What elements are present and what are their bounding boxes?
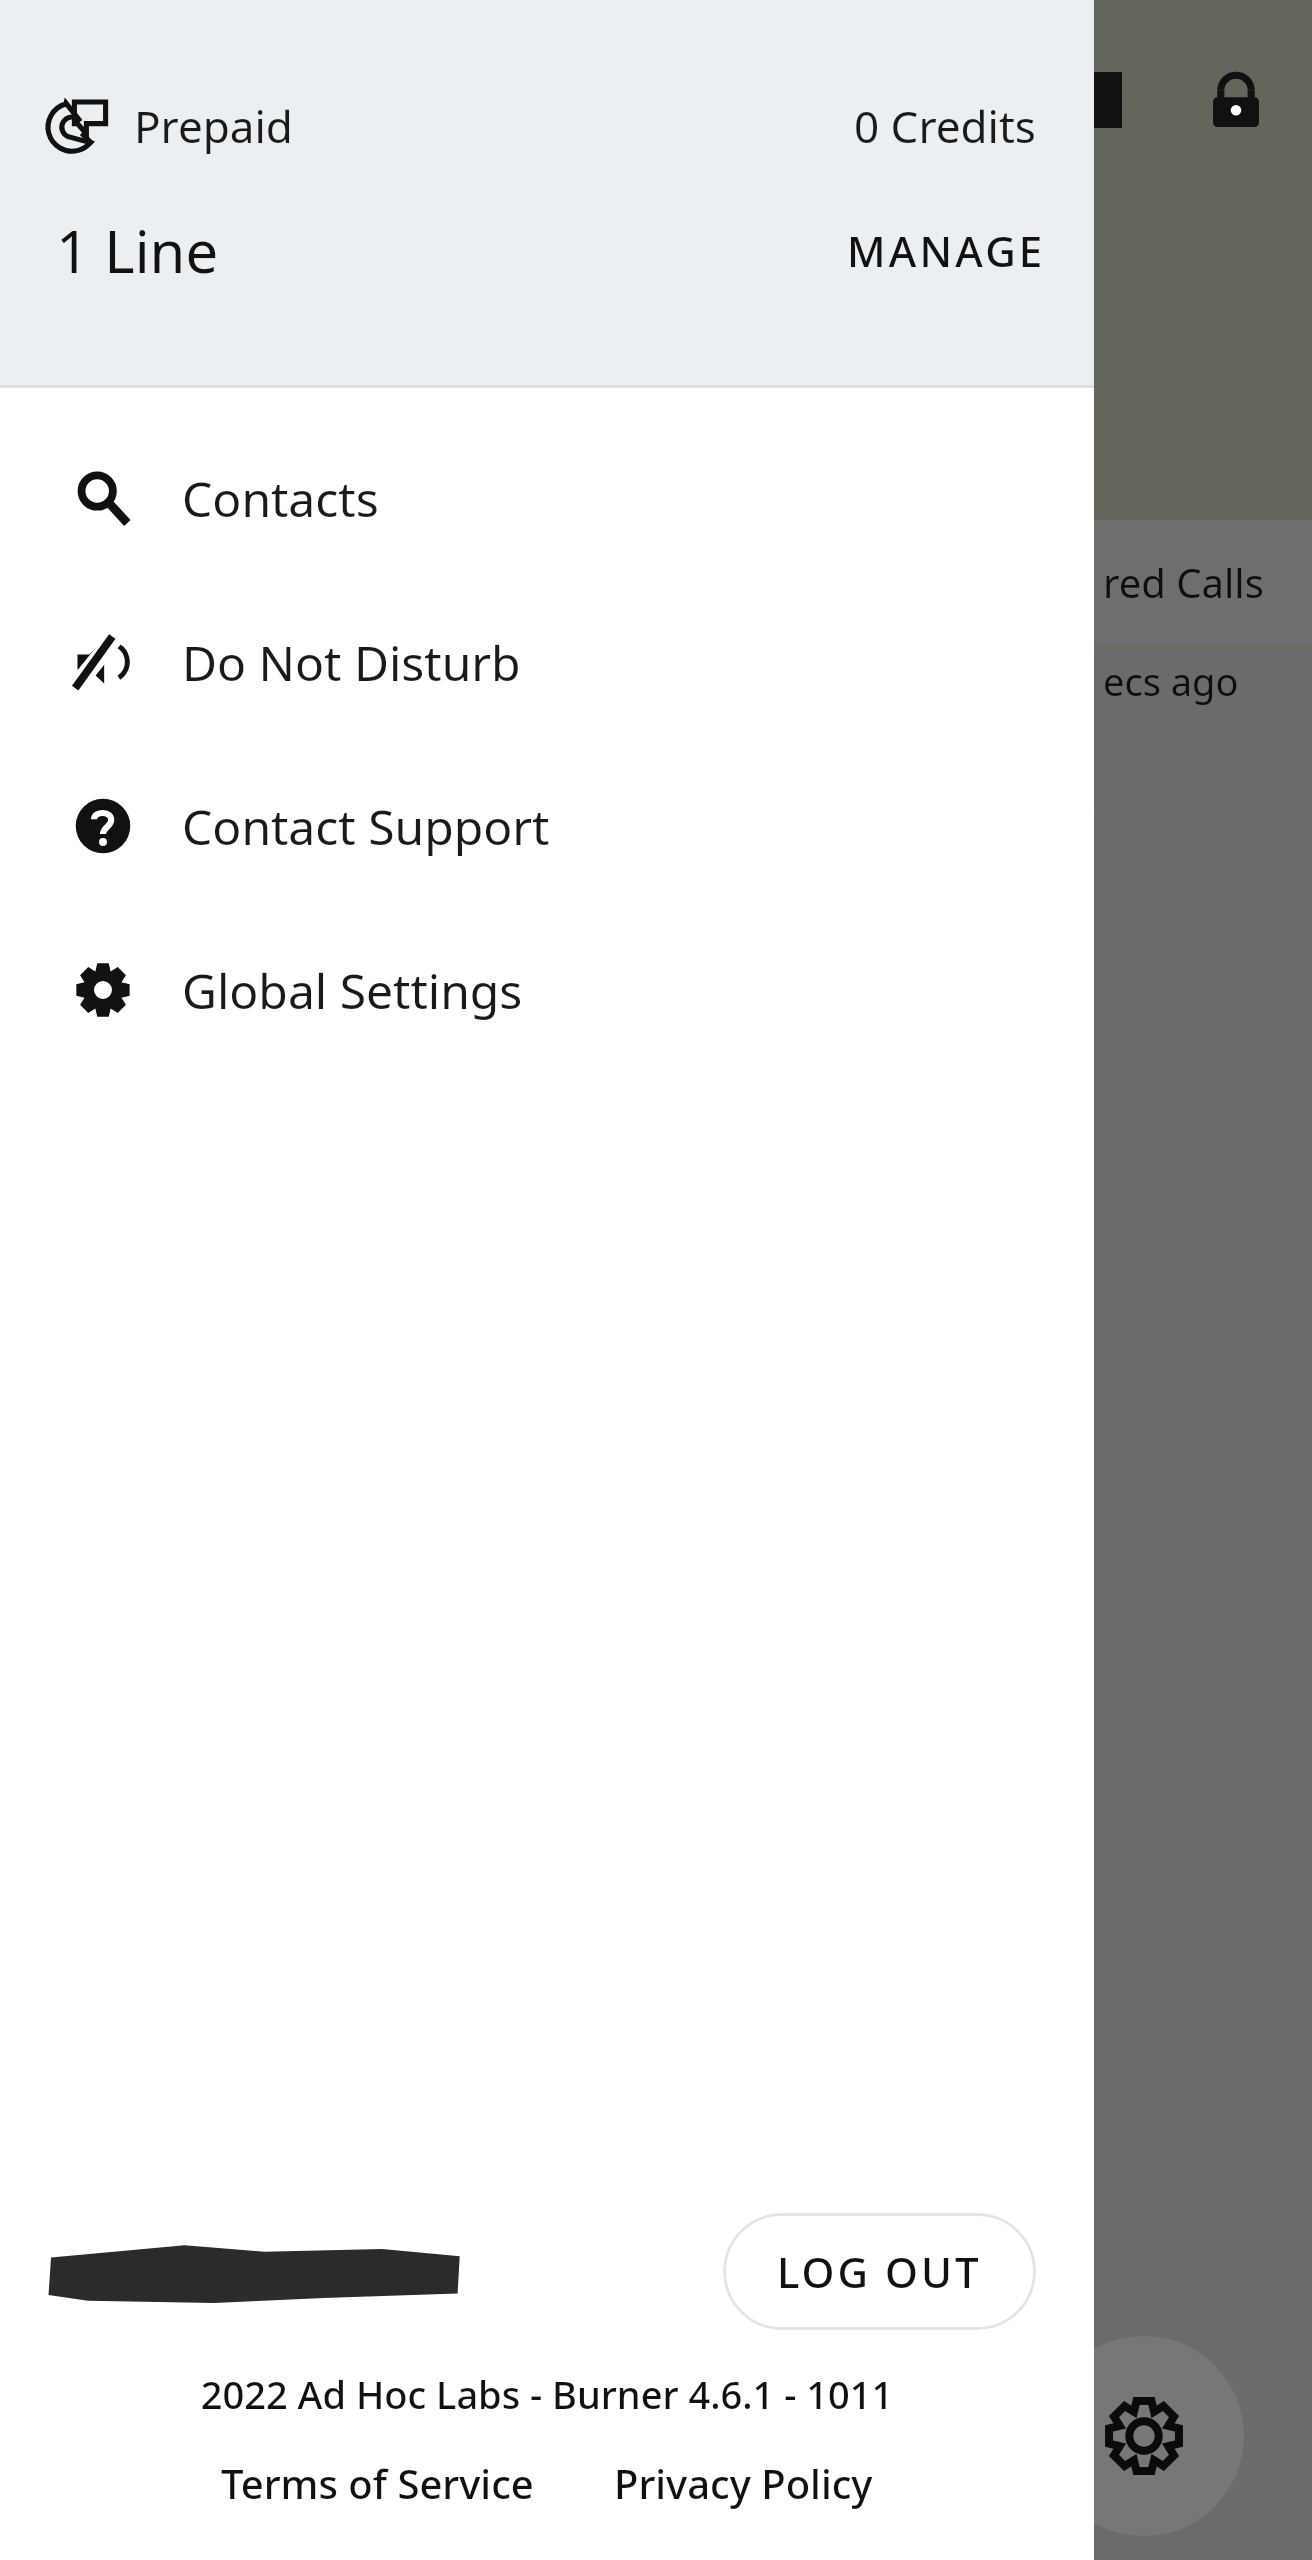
button[interactable]: Contacts <box>0 416 1094 580</box>
button[interactable]: Contact Support <box>0 744 1094 908</box>
staticText: Privacy Policy <box>614 2456 873 2510</box>
button[interactable]: Settings <box>1044 2336 1244 2536</box>
button[interactable]: Global Settings <box>0 908 1094 1072</box>
button[interactable]: Terms of Service <box>211 2450 544 2516</box>
button[interactable]: MANAGE <box>799 204 1094 297</box>
staticText: ecs ago <box>1103 655 1239 707</box>
staticText: Terms of Service <box>221 2456 534 2510</box>
staticText: Global Settings <box>182 958 523 1023</box>
staticText: LOG OUT <box>777 2243 982 2300</box>
staticText: 2022 Ad Hoc Labs - Burner 4.6.1 - 1011 <box>0 2368 1094 2420</box>
staticText: Do Not Disturb <box>182 630 521 695</box>
staticText: 1 Line <box>56 211 219 290</box>
staticText: 0 Credits <box>854 96 1036 156</box>
staticText: MANAGE <box>847 222 1046 279</box>
button[interactable]: LOG OUT <box>723 2213 1036 2330</box>
button[interactable]: Lock <box>1205 70 1267 132</box>
button[interactable]: Do Not Disturb <box>0 580 1094 744</box>
staticText: Contact Support <box>182 794 550 859</box>
staticText: red Calls <box>1103 555 1264 609</box>
staticText: Prepaid <box>134 96 293 156</box>
staticText: Contacts <box>182 466 379 531</box>
button[interactable]: Privacy Policy <box>604 2450 883 2516</box>
